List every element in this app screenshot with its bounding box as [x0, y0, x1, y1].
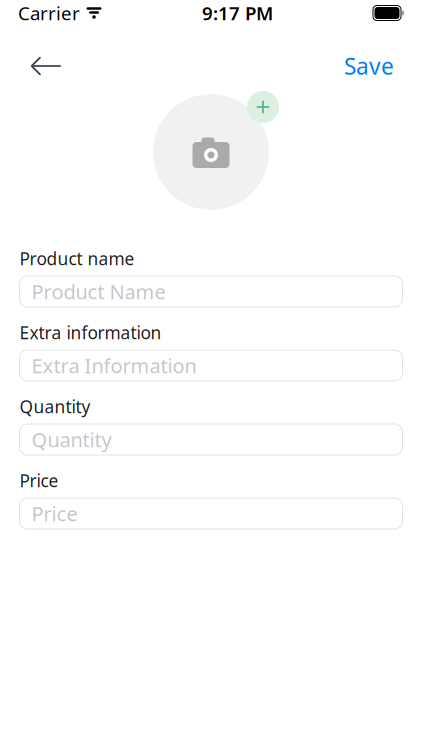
staticText: 9:17 PM [202, 1, 273, 25]
button[interactable]: Quantity [19, 424, 402, 455]
staticText: Save [344, 51, 394, 81]
button[interactable]: Product Name [19, 276, 402, 307]
staticText: Price [31, 500, 77, 527]
staticText: Price [19, 469, 58, 492]
button[interactable]: Price [19, 498, 402, 529]
staticText: Extra Information [31, 352, 196, 379]
staticText: Product name [19, 247, 134, 270]
button[interactable]: Extra Information [19, 350, 402, 381]
button[interactable]: Back [18, 44, 74, 88]
staticText: Quantity [19, 395, 90, 418]
staticText: Product Name [31, 278, 165, 305]
button[interactable]: Add product photo [136, 90, 286, 214]
staticText: Carrier [18, 1, 80, 25]
staticText: Quantity [31, 426, 111, 453]
button[interactable]: Save [334, 44, 404, 88]
staticText: Extra information [19, 321, 161, 344]
